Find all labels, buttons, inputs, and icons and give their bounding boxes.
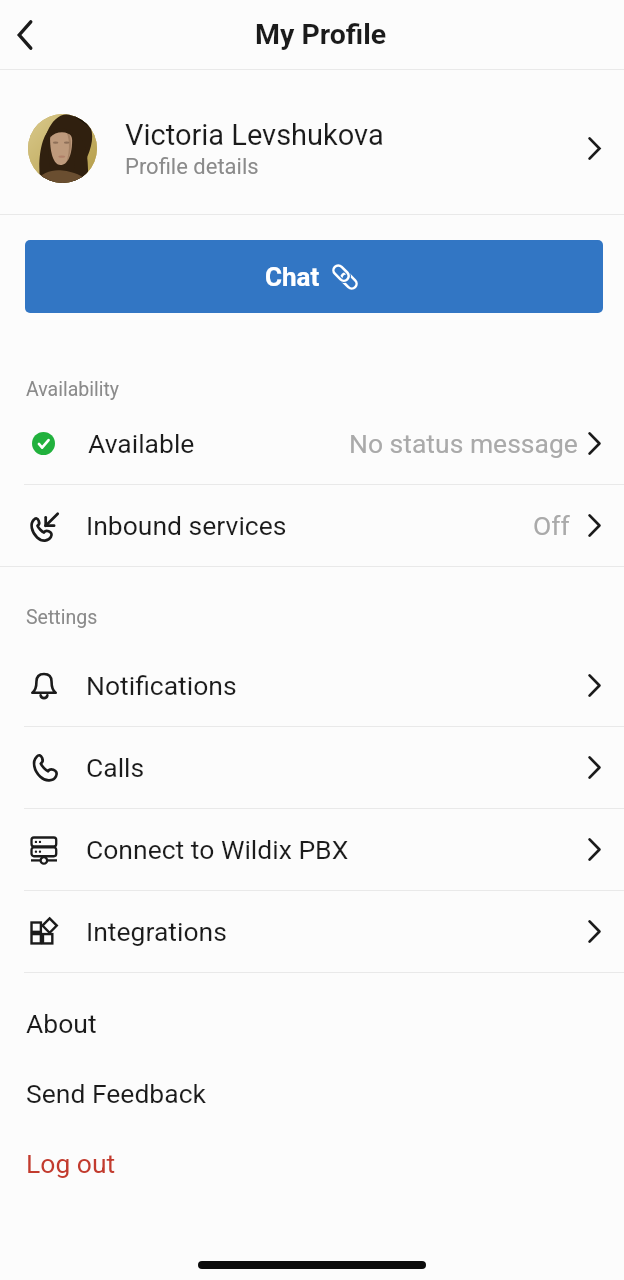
staticText: Inbound services bbox=[86, 510, 287, 541]
staticText: No status message bbox=[349, 428, 578, 459]
button[interactable]: Notifications bbox=[0, 645, 624, 726]
staticText: Off bbox=[533, 510, 570, 541]
staticText: Victoria Levshukova bbox=[125, 118, 384, 152]
staticText: Chat bbox=[265, 262, 320, 292]
staticText: Integrations bbox=[86, 916, 227, 947]
button[interactable]: Inbound services bbox=[0, 485, 624, 566]
button[interactable]: Log out bbox=[0, 1128, 624, 1198]
staticText: Send Feedback bbox=[26, 1078, 206, 1109]
staticText: Calls bbox=[86, 752, 145, 783]
staticText: Notifications bbox=[86, 670, 237, 701]
button[interactable]: Send Feedback bbox=[0, 1058, 624, 1128]
staticText: About bbox=[26, 1008, 97, 1039]
staticText: My Profile bbox=[255, 18, 387, 51]
button[interactable]: Victoria Levshukova bbox=[0, 70, 624, 214]
staticText: Connect to Wildix PBX bbox=[86, 834, 349, 865]
button[interactable]: Integrations bbox=[0, 891, 624, 972]
staticText: Log out bbox=[26, 1148, 116, 1179]
button[interactable]: Available bbox=[0, 403, 624, 484]
staticText: Profile details bbox=[125, 154, 259, 180]
button[interactable]: Back bbox=[0, 5, 60, 65]
button[interactable]: Connect to Wildix PBX bbox=[0, 809, 624, 890]
button[interactable]: About bbox=[0, 988, 624, 1058]
staticText: Availability bbox=[26, 378, 120, 401]
staticText: Available bbox=[88, 428, 195, 459]
button[interactable]: Calls bbox=[0, 727, 624, 808]
button[interactable]: Chat bbox=[25, 240, 603, 313]
staticText: Settings bbox=[26, 606, 98, 629]
